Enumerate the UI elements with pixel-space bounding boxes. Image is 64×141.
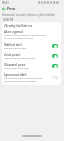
staticText: Akce vyjmutí bbox=[4, 30, 24, 34]
button[interactable]: Toggle bbox=[52, 54, 58, 58]
button[interactable]: Toggle bbox=[52, 44, 58, 48]
staticText: Přehrát zvuk při psaní perem bbox=[4, 57, 36, 60]
button[interactable]: Ignorovat dlaň bbox=[2, 71, 61, 85]
button[interactable]: Zkratky tlačítek na pero bbox=[2, 22, 61, 29]
staticText: Pero bbox=[7, 6, 16, 11]
staticText: Náhled akcí bbox=[4, 43, 22, 47]
staticText: Ukazatel pera bbox=[4, 63, 25, 67]
staticText: Zvuk psaní bbox=[4, 53, 21, 57]
button[interactable]: Toggle bbox=[52, 76, 58, 80]
staticText: Ignorovat dlaň bbox=[4, 73, 27, 77]
staticText: 09:41 bbox=[2, 1, 9, 5]
button[interactable]: Akce vyjmutí bbox=[2, 29, 61, 41]
button[interactable]: Zvuk psaní bbox=[2, 51, 61, 61]
staticText: Zobrazit panel aplikací po vyjmutí pera … bbox=[4, 34, 46, 40]
staticText: Zobrazit náhled akce bbox=[4, 47, 27, 50]
staticText: Zobrazovat kurzor pera bbox=[4, 67, 30, 70]
button[interactable]: Náhled akcí bbox=[2, 41, 61, 51]
button[interactable]: Back bbox=[0, 5, 7, 12]
staticText: Zkratky tlačítek na pero bbox=[4, 24, 38, 28]
button[interactable]: Toggle bbox=[52, 64, 58, 68]
staticText: Zabránit náhodným gestům prstem, když kr… bbox=[4, 77, 44, 83]
staticText: OBECNÉ bbox=[3, 18, 14, 22]
staticText: Nastavení chování stylusu a jeho tlačíte… bbox=[2, 13, 55, 17]
button[interactable]: Ukazatel pera bbox=[2, 61, 61, 71]
